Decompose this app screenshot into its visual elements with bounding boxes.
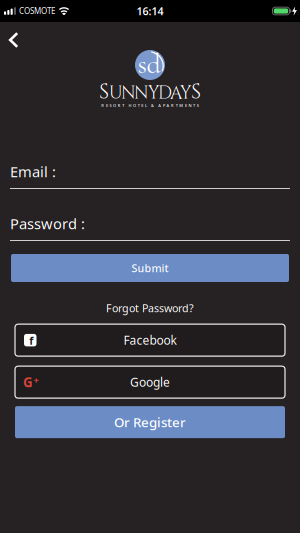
staticText: Forgot Password? [106,301,194,315]
staticText: Google [130,374,170,390]
button[interactable]: Back [0,30,29,50]
staticText: f [29,334,33,348]
staticText: S [191,78,201,106]
staticText: RESORT HOTEL & APARTMENTS [101,103,199,108]
staticText: Password : [10,214,85,233]
button[interactable]: Submit [0,254,300,282]
staticText: Facebook [123,332,176,348]
staticText: + [33,374,38,386]
button[interactable]: Forgot Password? [106,297,194,319]
staticText: G [23,373,33,391]
staticText: 16:14 [136,4,163,18]
button[interactable]: Google [0,366,300,398]
button[interactable]: Or Register [0,406,300,438]
staticText: COSMOTE [19,6,55,16]
staticText: UNNYDAY [109,81,191,105]
button[interactable]: Facebook [0,324,300,356]
staticText: Or Register [114,413,186,431]
staticText: Email : [10,162,56,181]
staticText: S [99,78,109,106]
staticText: Submit [131,261,168,275]
staticText: sd [137,47,160,81]
